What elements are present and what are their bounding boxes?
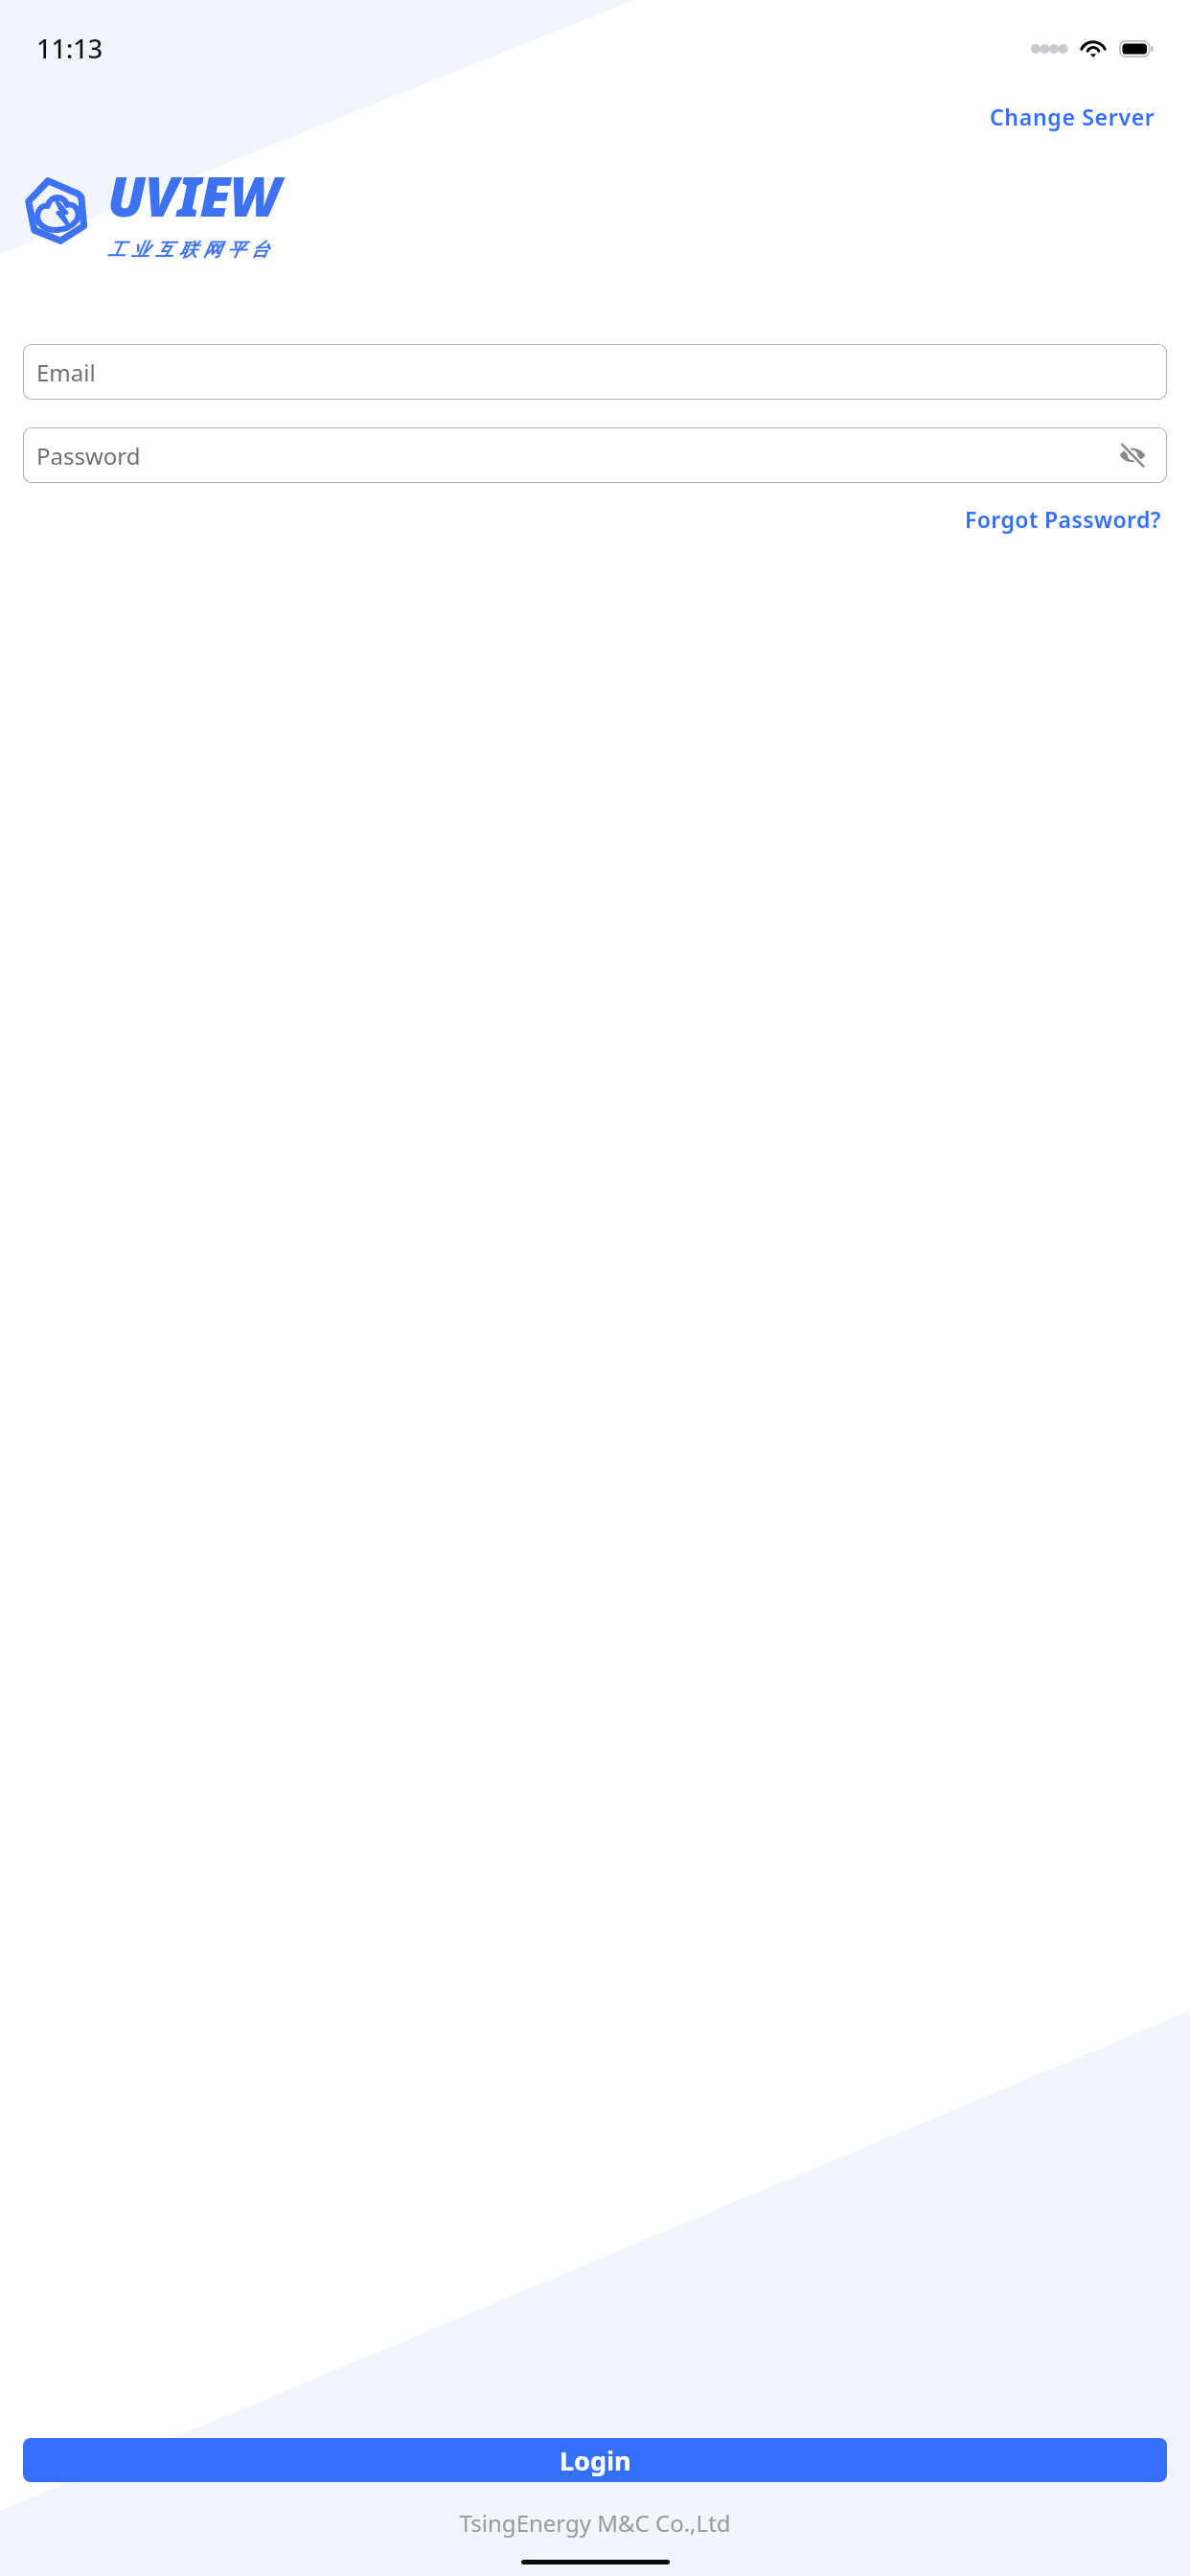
staticText: Forgot Password?: [965, 504, 1161, 534]
button[interactable]: Password: [23, 427, 1167, 483]
staticText: UVIEW: [107, 158, 280, 233]
staticText: 工 业 互 联 网 平 台: [107, 237, 270, 262]
staticText: TsingEnergy M&C Co.,Ltd: [0, 2507, 1190, 2539]
staticText: Email: [36, 356, 96, 388]
button[interactable]: Show password: [1113, 436, 1152, 474]
staticText: 11:13: [36, 31, 103, 66]
button[interactable]: Email: [23, 344, 1167, 400]
staticText: Password: [36, 440, 141, 471]
button[interactable]: Login: [23, 2438, 1167, 2482]
button[interactable]: Change Server: [986, 96, 1159, 137]
staticText: Change Server: [990, 102, 1156, 131]
button[interactable]: Forgot Password?: [961, 498, 1165, 540]
staticText: Login: [560, 2443, 631, 2478]
